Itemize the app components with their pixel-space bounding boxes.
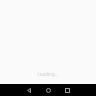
button[interactable]: Back xyxy=(22,84,36,96)
button[interactable]: Home xyxy=(41,84,55,96)
button[interactable]: Recents xyxy=(60,84,74,96)
staticText: Loading... xyxy=(37,71,59,77)
